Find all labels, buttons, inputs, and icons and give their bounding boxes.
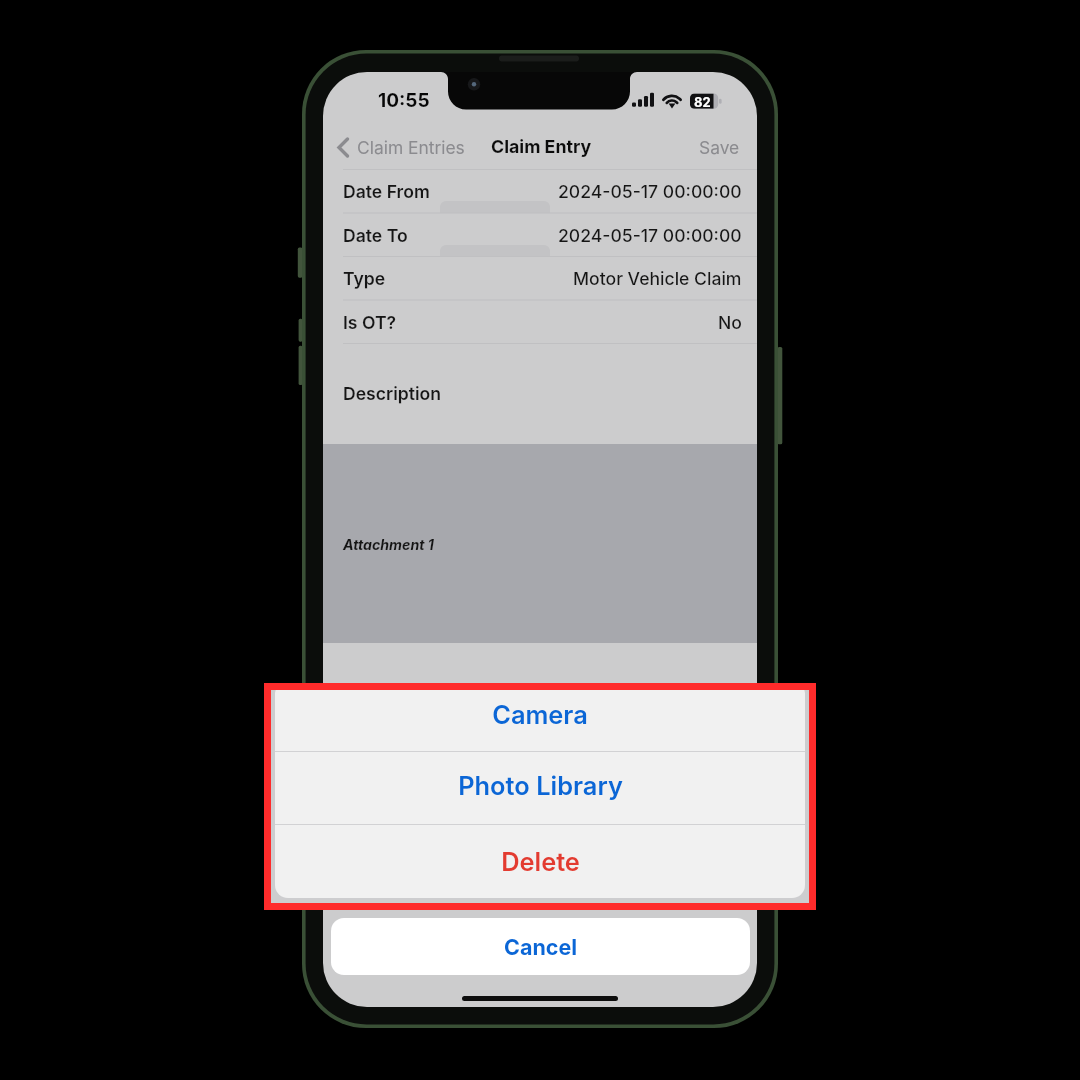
staticText: Type xyxy=(343,268,386,289)
button[interactable]: Back xyxy=(323,132,473,163)
button[interactable]: Date From xyxy=(323,169,757,213)
staticText: 82 xyxy=(694,94,711,110)
staticText: Attachment 1 xyxy=(343,536,434,553)
button[interactable]: Camera xyxy=(275,683,805,748)
staticText: 2024-05-17 00:00:00 xyxy=(558,225,742,246)
button[interactable]: Attachment 1 xyxy=(323,444,757,643)
staticText: 10:55 xyxy=(378,89,430,112)
staticText: 2024-05-17 00:00:00 xyxy=(558,181,742,202)
staticText: Camera xyxy=(492,699,588,730)
staticText: Description xyxy=(343,383,442,404)
staticText: Date To xyxy=(343,225,408,246)
staticText: No xyxy=(718,312,742,333)
button[interactable]: Cancel xyxy=(331,918,750,975)
button[interactable]: Description xyxy=(323,343,757,444)
other: Back xyxy=(337,137,349,158)
staticText: Photo Library xyxy=(458,770,623,801)
staticText: Claim Entries xyxy=(357,137,465,158)
staticText: Date From xyxy=(343,181,430,202)
staticText: Motor Vehicle Claim xyxy=(573,268,742,289)
button[interactable]: Photo Library xyxy=(275,749,805,822)
button[interactable]: Date To xyxy=(323,213,757,257)
staticText: Is OT? xyxy=(343,312,397,333)
button[interactable]: Type xyxy=(323,256,757,300)
staticText: Delete xyxy=(501,846,580,877)
button[interactable]: Is OT? xyxy=(323,300,757,344)
staticText: Cancel xyxy=(504,934,578,960)
staticText: Claim Entry xyxy=(491,136,592,158)
button[interactable]: Save xyxy=(682,131,757,164)
button[interactable]: Delete xyxy=(275,825,805,897)
